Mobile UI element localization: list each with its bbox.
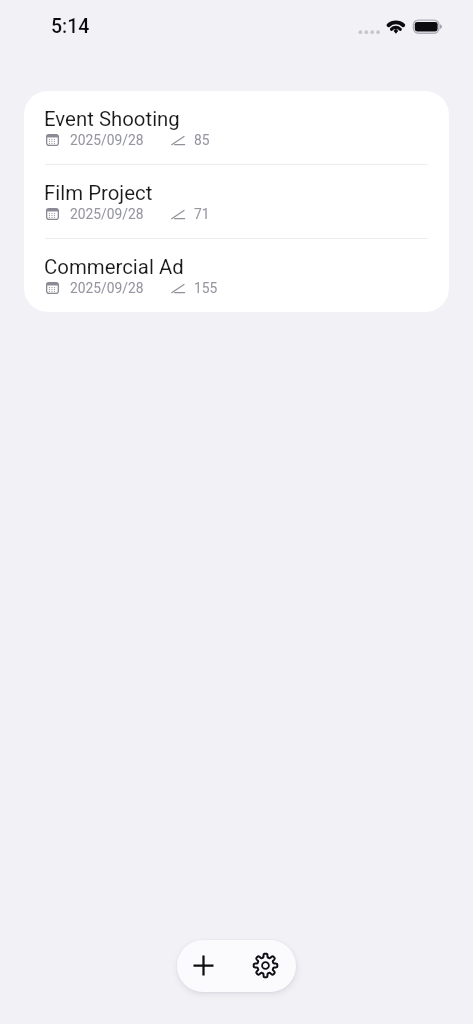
staticText: 5:14 xyxy=(51,15,90,38)
button[interactable]: Settings xyxy=(244,944,287,987)
button[interactable]: Add project xyxy=(182,944,225,987)
staticText: 2025/09/28 xyxy=(70,280,144,296)
staticText: 71 xyxy=(194,206,210,222)
staticText: 2025/09/28 xyxy=(70,132,144,148)
button[interactable]: Commercial Ad xyxy=(24,239,449,312)
staticText: 155 xyxy=(194,280,218,296)
staticText: Commercial Ad xyxy=(44,255,184,279)
staticText: Event Shooting xyxy=(44,107,180,131)
staticText: 85 xyxy=(194,132,210,148)
button[interactable]: Event Shooting xyxy=(24,91,449,164)
staticText: Film Project xyxy=(44,181,153,205)
button[interactable]: Film Project xyxy=(24,165,449,238)
staticText: 2025/09/28 xyxy=(70,206,144,222)
